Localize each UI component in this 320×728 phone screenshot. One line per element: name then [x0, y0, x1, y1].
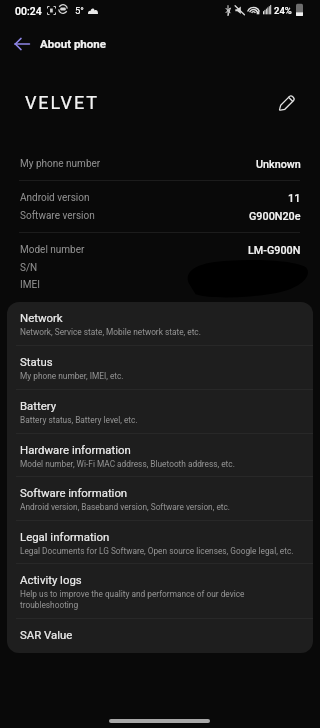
button[interactable]: Activity logs: [7, 564, 313, 619]
staticText: Unknown: [256, 158, 301, 171]
button[interactable]: Back: [8, 30, 36, 58]
button[interactable]: Battery: [7, 390, 313, 434]
button[interactable]: Legal information: [7, 521, 313, 564]
staticText: Model number, Wi-Fi MAC address, Bluetoo…: [20, 459, 235, 469]
staticText: My phone number, IMEI, etc.: [20, 371, 124, 381]
staticText: 00:24: [15, 5, 42, 17]
staticText: Android version, Baseband version, Softw…: [20, 502, 231, 512]
staticText: Battery: [20, 399, 57, 412]
button[interactable]: SAR Value: [7, 619, 313, 653]
button[interactable]: Status: [7, 346, 313, 390]
button[interactable]: Network: [7, 302, 313, 346]
staticText: Network: [20, 311, 63, 324]
staticText: S/N: [20, 262, 38, 274]
staticText: Model number: [20, 244, 85, 256]
staticText: G900N20e: [249, 210, 301, 223]
staticText: About phone: [40, 37, 106, 50]
button[interactable]: Hardware information: [7, 434, 313, 477]
staticText: VELVET: [25, 92, 99, 113]
staticText: Android version: [20, 192, 90, 204]
staticText: Hardware information: [20, 443, 131, 456]
staticText: SAR Value: [20, 628, 73, 641]
staticText: 11: [288, 192, 301, 205]
staticText: Legal information: [20, 530, 110, 543]
staticText: Status: [20, 355, 53, 368]
button[interactable]: Edit device name: [271, 86, 303, 118]
staticText: 24%: [274, 5, 292, 16]
staticText: 5°: [75, 5, 84, 16]
staticText: IMEI: [20, 279, 40, 291]
staticText: Legal Documents for LG Software, Open so…: [20, 546, 294, 556]
staticText: Battery status, Battery level, etc.: [20, 415, 138, 425]
staticText: Software information: [20, 486, 128, 499]
staticText: Software version: [20, 210, 95, 222]
staticText: LM-G900N: [248, 244, 301, 257]
button[interactable]: Software information: [7, 477, 313, 521]
staticText: Activity logs: [20, 573, 82, 586]
staticText: My phone number: [20, 158, 101, 170]
staticText: Help us to improve the quality and perfo…: [20, 589, 245, 610]
staticText: Network, Service state, Mobile network s…: [20, 327, 201, 337]
